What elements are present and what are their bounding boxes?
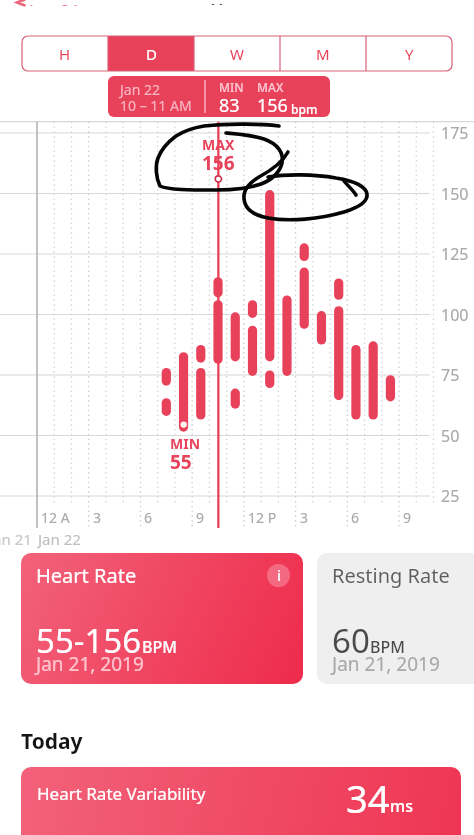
staticText: 12 A: [41, 508, 70, 527]
staticText: 6: [351, 508, 360, 527]
staticText: Heart Rate: [36, 562, 137, 589]
button[interactable]: M: [280, 36, 366, 71]
staticText: MIN: [170, 434, 201, 453]
staticText: ms: [390, 795, 413, 817]
staticText: 3: [300, 508, 309, 527]
staticText: 55: [170, 449, 192, 475]
staticText: BPM: [370, 636, 405, 658]
staticText: 150: [441, 183, 469, 205]
staticText: Y: [405, 44, 414, 64]
staticText: 9: [403, 508, 412, 527]
staticText: 125: [441, 243, 469, 265]
button[interactable]: Info: [267, 564, 290, 587]
staticText: 3: [93, 508, 102, 527]
button[interactable]: H: [22, 36, 108, 71]
staticText: 175: [441, 122, 469, 144]
staticText: Jan 21, 2019: [36, 651, 144, 677]
staticText: bpm: [291, 101, 318, 117]
staticText: MIN: [219, 79, 244, 95]
staticText: Today: [21, 727, 83, 756]
button[interactable]: Jan 21: [0, 0, 474, 7]
staticText: 9: [196, 508, 205, 527]
button[interactable]: D: [108, 36, 194, 71]
staticText: 156: [257, 93, 288, 117]
staticText: M: [316, 44, 330, 64]
button[interactable]: W: [194, 36, 280, 71]
staticText: 55-156: [36, 618, 142, 663]
staticText: Jan 22: [38, 529, 81, 549]
staticText: 75: [441, 364, 460, 386]
button[interactable]: Heart Rate: [21, 553, 303, 684]
staticText: D: [146, 44, 157, 64]
staticText: 60: [332, 618, 370, 663]
button[interactable]: Jan 22: [108, 76, 330, 117]
staticText: Jan 21, 2019: [332, 651, 440, 677]
staticText: Jan 21: [29, 0, 81, 6]
staticText: 25: [441, 485, 460, 507]
staticText: 83: [219, 93, 240, 117]
button[interactable]: Y: [366, 36, 452, 71]
staticText: 100: [441, 304, 469, 326]
staticText: Heart Rate Variability: [37, 782, 206, 805]
staticText: MAX: [202, 135, 235, 154]
staticText: Heart: [210, 0, 262, 5]
staticText: 12 P: [248, 508, 277, 527]
button[interactable]: Resting Rate: [317, 553, 474, 684]
staticText: Jan 22: [120, 80, 160, 99]
staticText: 10 – 11 AM: [120, 96, 192, 115]
staticText: Resting Rate: [332, 562, 450, 589]
staticText: MAX: [257, 79, 284, 95]
staticText: i: [277, 566, 281, 585]
staticText: 156: [202, 150, 235, 176]
staticText: W: [230, 44, 244, 64]
staticText: BPM: [142, 636, 177, 658]
button[interactable]: Heart Rate Variability: [21, 767, 461, 835]
staticText: 34: [346, 772, 390, 824]
staticText: 50: [441, 425, 460, 447]
staticText: Jan 21: [0, 529, 32, 549]
staticText: H: [59, 44, 71, 64]
staticText: 6: [144, 508, 153, 527]
